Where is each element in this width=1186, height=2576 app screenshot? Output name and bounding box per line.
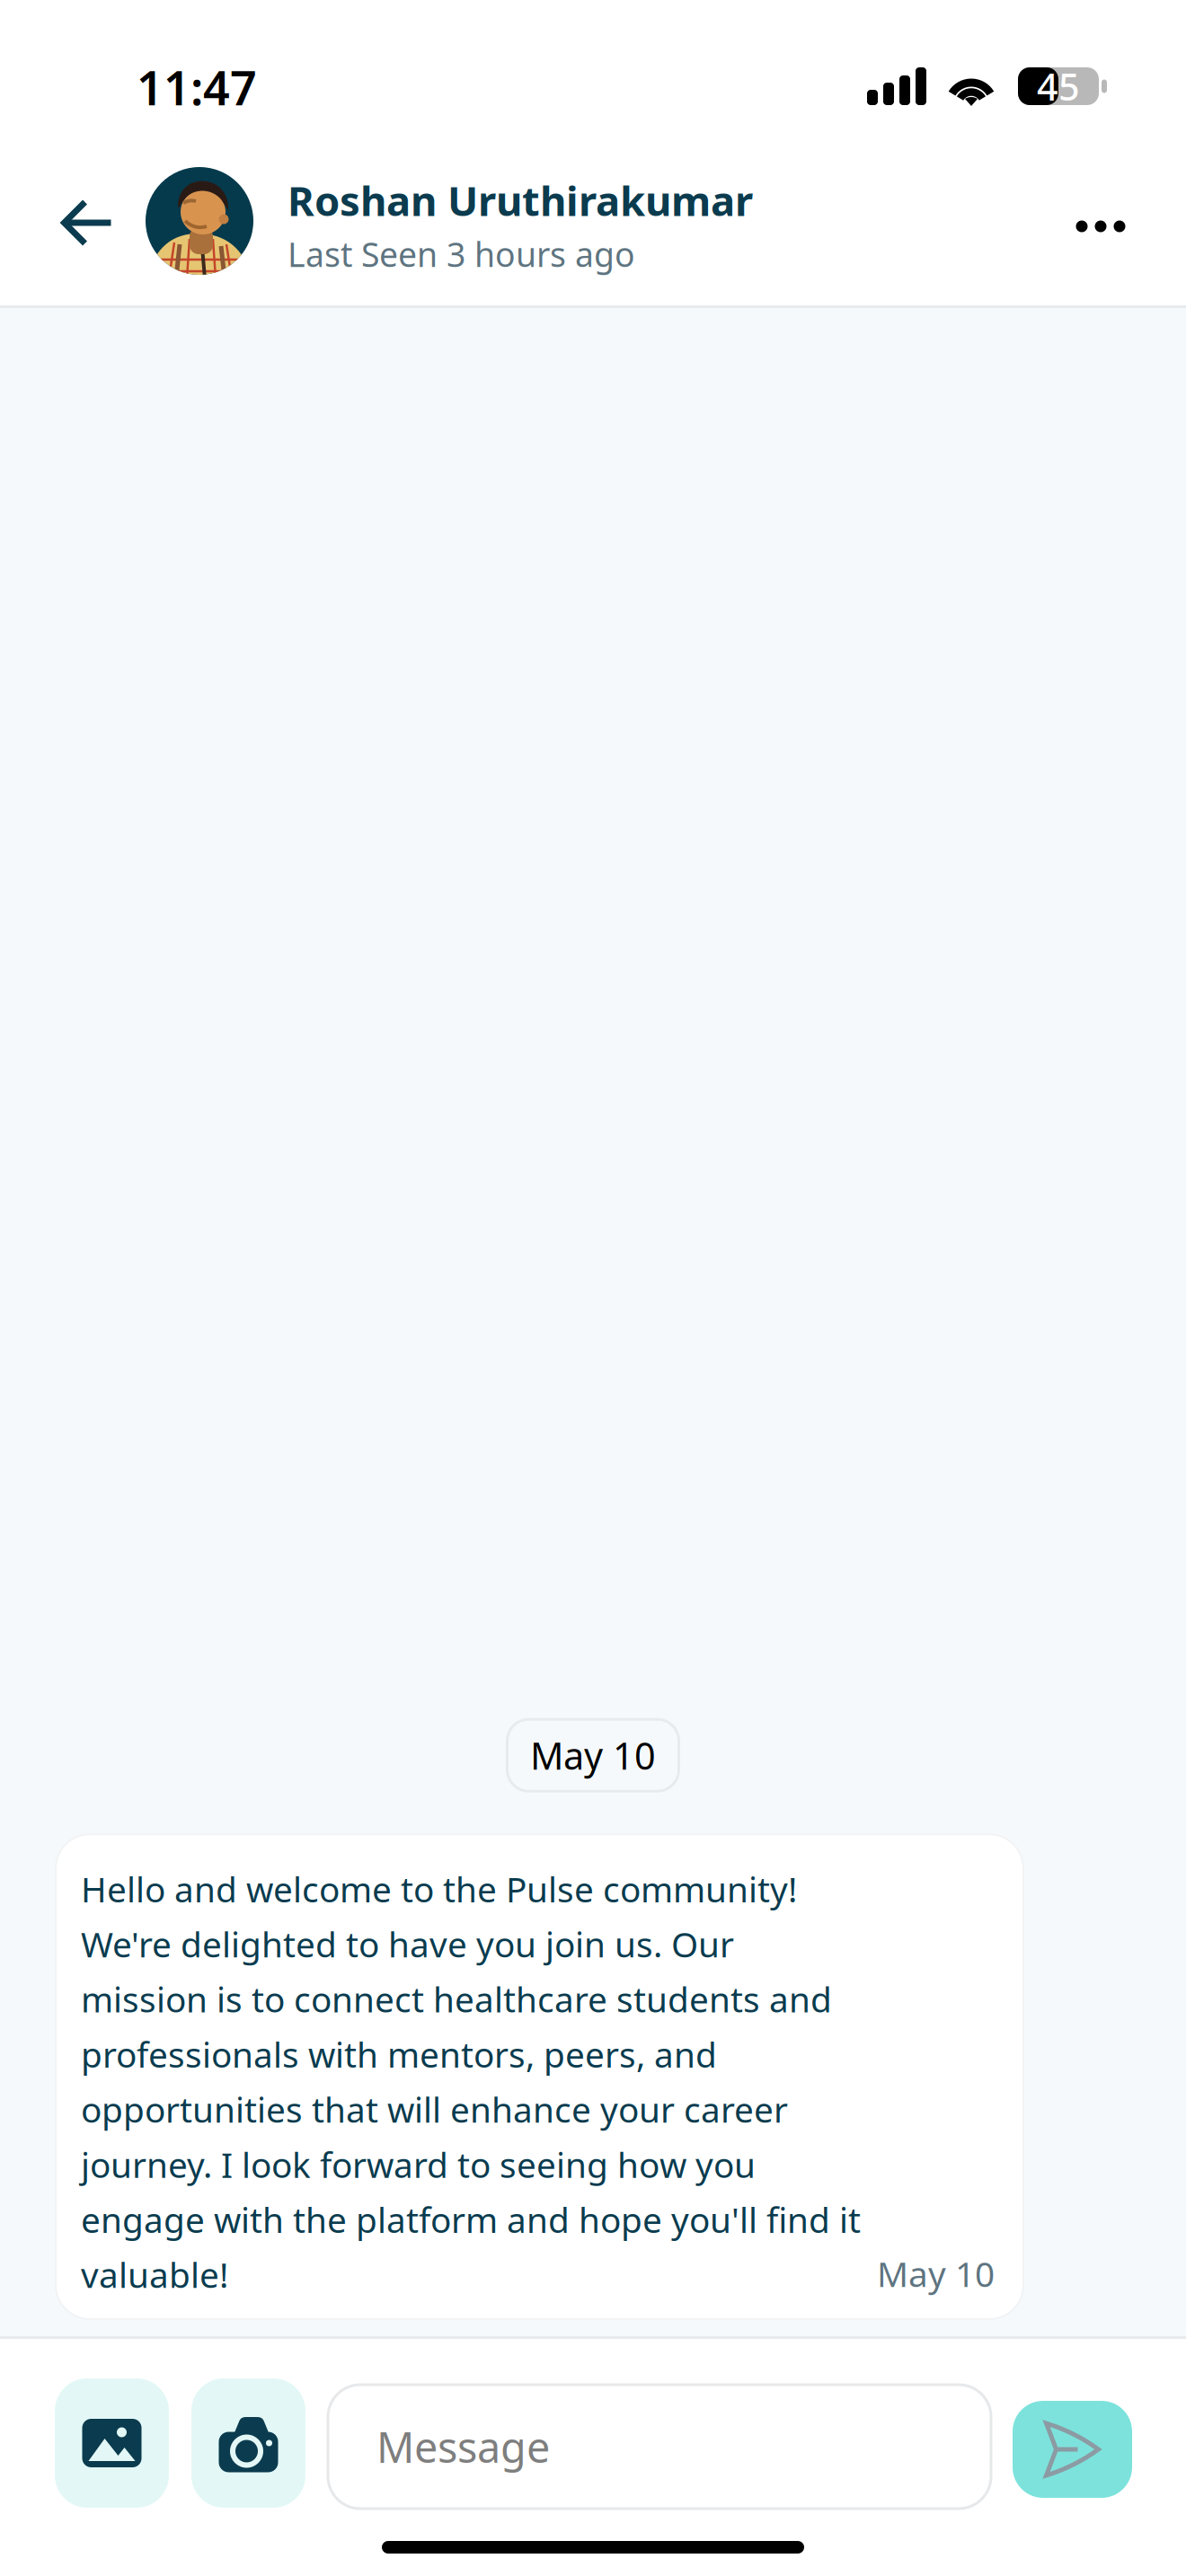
button[interactable]: Camera <box>191 2378 305 2508</box>
button[interactable]: Roshan Uruthirakumar <box>146 163 1027 279</box>
staticText: 11:47 <box>137 56 257 118</box>
button[interactable]: More options <box>1027 163 1151 279</box>
button[interactable]: Back <box>28 163 146 279</box>
button[interactable]: Message <box>328 2381 991 2505</box>
staticText: 45 <box>1037 62 1080 111</box>
staticText: Last Seen 3 hours ago <box>288 232 635 276</box>
staticText: Roshan Uruthirakumar <box>288 173 753 227</box>
staticText: Hello and welcome to the Pulse community… <box>81 1866 861 2298</box>
staticText: Message <box>376 2419 550 2475</box>
button[interactable]: Send <box>1013 2395 1132 2492</box>
staticText: May 10 <box>877 2251 995 2297</box>
staticText: May 10 <box>530 1731 656 1780</box>
button[interactable]: Photo library <box>55 2378 169 2508</box>
